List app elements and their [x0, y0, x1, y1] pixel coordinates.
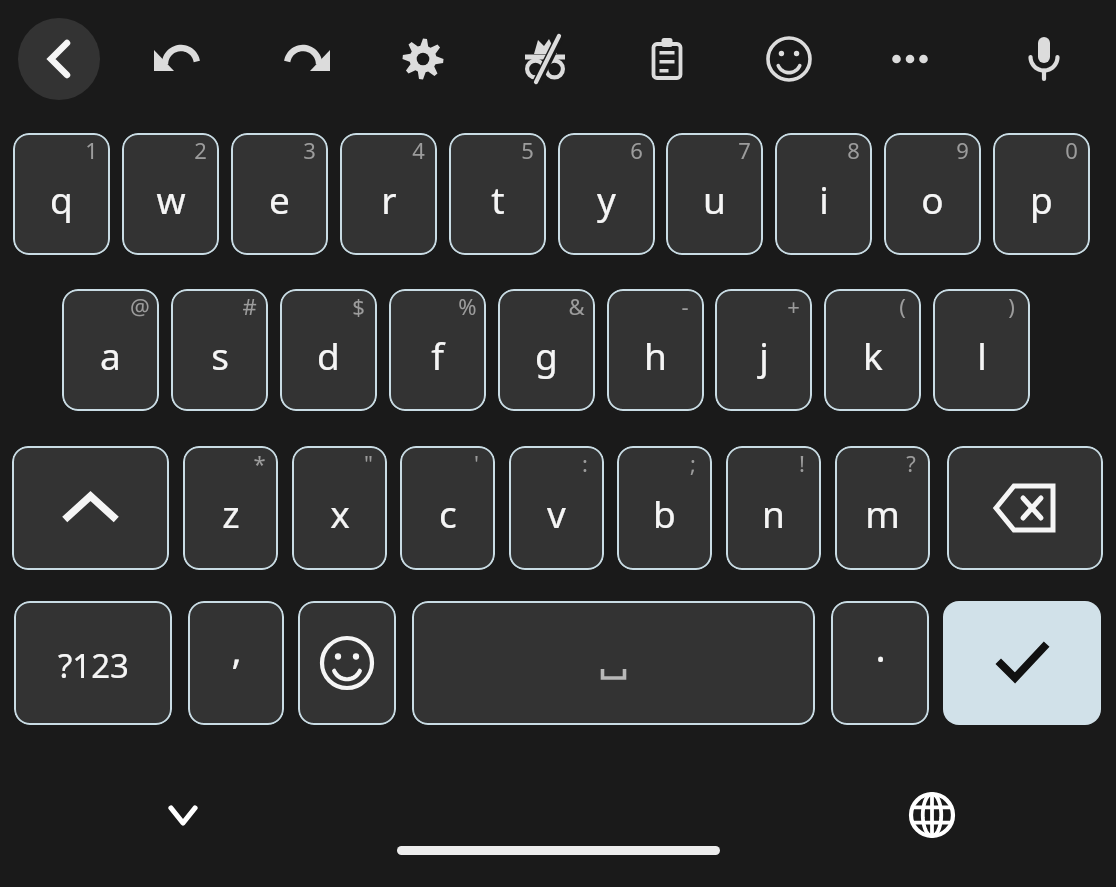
- staticText: z: [222, 488, 240, 538]
- button[interactable]: v: [509, 446, 604, 570]
- staticText: r: [381, 174, 397, 224]
- button[interactable]: t: [449, 133, 546, 255]
- staticText: ?123: [58, 643, 129, 688]
- staticText: %: [458, 291, 477, 319]
- button[interactable]: Clipboard: [638, 30, 696, 88]
- staticText: 1: [85, 135, 98, 163]
- staticText: v: [547, 488, 566, 538]
- staticText: d: [317, 330, 340, 380]
- staticText: (: [899, 291, 906, 319]
- button[interactable]: b: [617, 446, 712, 570]
- button[interactable]: p: [993, 133, 1090, 255]
- staticText: k: [863, 330, 883, 380]
- staticText: :: [582, 448, 588, 476]
- staticText: n: [762, 488, 785, 538]
- staticText: g: [535, 330, 558, 380]
- button[interactable]: e: [231, 133, 328, 255]
- button[interactable]: d: [280, 289, 377, 411]
- staticText: y: [597, 174, 616, 224]
- button[interactable]: f: [389, 289, 486, 411]
- staticText: p: [1030, 174, 1053, 224]
- staticText: ': [474, 448, 479, 476]
- button[interactable]: i: [775, 133, 872, 255]
- button[interactable]: Back: [18, 18, 100, 100]
- button[interactable]: g: [498, 289, 595, 411]
- button[interactable]: u: [666, 133, 763, 255]
- staticText: h: [644, 330, 667, 380]
- staticText: o: [921, 174, 944, 224]
- button[interactable]: z: [183, 446, 278, 570]
- staticText: ): [1008, 291, 1015, 319]
- button[interactable]: Shift: [12, 446, 169, 570]
- button[interactable]: o: [884, 133, 981, 255]
- staticText: q: [50, 174, 73, 224]
- staticText: 2: [194, 135, 207, 163]
- staticText: l: [977, 330, 987, 380]
- button[interactable]: Emoji: [760, 30, 818, 88]
- staticText: w: [156, 174, 186, 224]
- staticText: 3: [303, 135, 316, 163]
- button[interactable]: y: [558, 133, 655, 255]
- button[interactable]: j: [715, 289, 812, 411]
- button[interactable]: a: [62, 289, 159, 411]
- staticText: m: [865, 488, 900, 538]
- button[interactable]: Redo: [274, 30, 332, 88]
- button[interactable]: Hide keyboard: [154, 786, 212, 844]
- button[interactable]: Voice input: [1015, 30, 1073, 88]
- staticText: 7: [738, 135, 751, 163]
- staticText: f: [431, 330, 444, 380]
- button[interactable]: m: [835, 446, 930, 570]
- staticText: 4: [412, 135, 425, 163]
- staticText: 0: [1065, 135, 1078, 163]
- button[interactable]: Undo: [152, 30, 210, 88]
- button[interactable]: x: [292, 446, 387, 570]
- staticText: e: [269, 174, 290, 224]
- staticText: ;: [690, 448, 696, 476]
- staticText: 5: [521, 135, 534, 163]
- button[interactable]: Settings: [394, 30, 452, 88]
- button[interactable]: h: [607, 289, 704, 411]
- staticText: &: [568, 291, 585, 319]
- button[interactable]: ,: [188, 601, 284, 725]
- staticText: -: [681, 291, 689, 319]
- button[interactable]: s: [171, 289, 268, 411]
- staticText: 9: [956, 135, 969, 163]
- button[interactable]: w: [122, 133, 219, 255]
- staticText: #: [242, 291, 257, 319]
- staticText: !: [799, 448, 805, 476]
- button[interactable]: Change language: [903, 786, 961, 844]
- button[interactable]: k: [824, 289, 921, 411]
- staticText: a: [100, 330, 121, 380]
- button[interactable]: More options: [881, 30, 939, 88]
- button[interactable]: Incognito off: [516, 30, 574, 88]
- staticText: .: [875, 621, 886, 673]
- staticText: ": [364, 448, 373, 476]
- staticText: @: [130, 291, 150, 319]
- staticText: c: [439, 488, 457, 538]
- button[interactable]: Enter: [943, 601, 1101, 725]
- button[interactable]: Backspace: [947, 446, 1103, 570]
- staticText: *: [253, 448, 266, 476]
- button[interactable]: Emoji: [298, 601, 396, 725]
- staticText: +: [787, 291, 800, 319]
- staticText: x: [330, 488, 350, 538]
- button[interactable]: .: [831, 601, 929, 725]
- staticText: s: [211, 330, 229, 380]
- staticText: b: [653, 488, 676, 538]
- staticText: j: [759, 330, 769, 380]
- staticText: 6: [630, 135, 643, 163]
- button[interactable]: l: [933, 289, 1030, 411]
- staticText: $: [352, 291, 365, 319]
- staticText: u: [703, 174, 726, 224]
- button[interactable]: c: [400, 446, 495, 570]
- button[interactable]: q: [13, 133, 110, 255]
- button[interactable]: r: [340, 133, 437, 255]
- button[interactable]: n: [726, 446, 821, 570]
- staticText: ,: [231, 623, 242, 675]
- button[interactable]: Space: [412, 601, 815, 725]
- staticText: ?: [906, 448, 916, 476]
- staticText: t: [491, 174, 505, 224]
- button[interactable]: ?123: [14, 601, 172, 725]
- staticText: 8: [847, 135, 860, 163]
- staticText: i: [819, 174, 829, 224]
